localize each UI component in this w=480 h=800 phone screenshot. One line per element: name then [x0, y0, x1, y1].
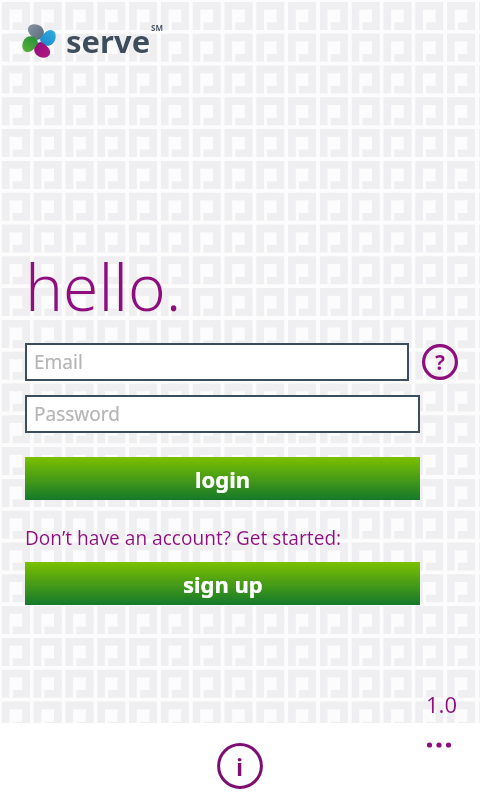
button[interactable]: Email [25, 343, 409, 381]
staticText: ? [435, 348, 446, 377]
staticText: i [236, 750, 244, 783]
staticText: sign up [183, 569, 263, 599]
staticText: Email [34, 349, 83, 375]
staticText: hello. [25, 243, 182, 330]
staticText: serve [66, 20, 151, 62]
staticText: login [195, 464, 251, 494]
button[interactable]: login [25, 457, 420, 500]
staticText: Don’t have an account? Get started: [25, 525, 342, 551]
staticText: 1.0 [426, 689, 458, 719]
button[interactable]: More options [416, 732, 462, 758]
button[interactable]: Password [25, 395, 420, 433]
staticText: Password [34, 401, 120, 427]
button[interactable]: sign up [25, 562, 420, 605]
button[interactable]: Help [422, 344, 458, 380]
staticText: SM [151, 22, 163, 33]
button[interactable]: About [217, 743, 263, 789]
